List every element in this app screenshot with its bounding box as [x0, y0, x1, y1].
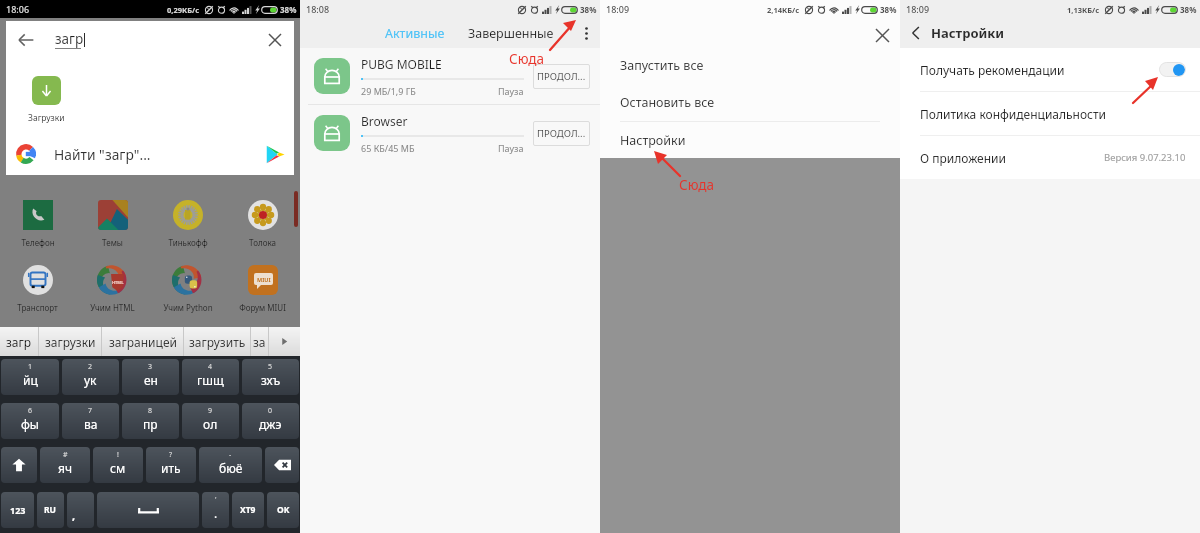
staticText: 2,14КБ/c — [767, 5, 800, 15]
button[interactable]: Завершенные — [462, 20, 560, 47]
staticText: 18:09 — [606, 3, 630, 15]
button[interactable]: Numbers — [1, 492, 34, 528]
staticText: Завершенные — [468, 25, 554, 42]
button[interactable]: загрузки — [39, 327, 101, 356]
staticText: зхъ — [261, 372, 281, 388]
button[interactable]: OK — [267, 492, 299, 528]
staticText: Учим HTML — [90, 302, 135, 313]
button[interactable]: Политика конфиденциальности — [900, 92, 1200, 135]
button[interactable]: Back — [13, 27, 39, 53]
button[interactable]: Toggle recommendations — [1159, 62, 1186, 77]
button[interactable]: 2 — [62, 359, 119, 395]
button[interactable]: ' — [202, 492, 229, 528]
button[interactable]: PUBG MOBILE — [300, 48, 600, 104]
button[interactable]: MIUI — [225, 264, 300, 313]
staticText: 2 — [88, 362, 93, 372]
button[interactable]: More options — [575, 22, 597, 44]
staticText: 0,29КБ/c — [167, 5, 200, 15]
button[interactable]: Учим Python — [150, 264, 225, 313]
staticText: Сюда — [509, 50, 544, 68]
button[interactable]: загр — [0, 327, 38, 356]
button[interactable]: 5 — [242, 359, 299, 395]
staticText: RU — [44, 504, 57, 516]
staticText: 0 — [268, 406, 273, 416]
staticText: Активные — [385, 25, 445, 42]
staticText: 1 — [28, 362, 33, 372]
button[interactable]: ? — [146, 447, 196, 483]
button[interactable]: Clear — [263, 28, 287, 52]
button[interactable]: Comma — [67, 492, 94, 528]
button[interactable]: заграницей — [102, 327, 183, 356]
button[interactable]: # — [40, 447, 90, 483]
staticText: 65 КБ/45 МБ — [361, 142, 415, 154]
button[interactable]: Тинькофф — [150, 199, 225, 248]
button[interactable]: 6 — [1, 403, 59, 439]
staticText: фы — [21, 416, 39, 432]
button[interactable]: Language — [37, 492, 64, 528]
button[interactable]: Темы — [75, 199, 150, 248]
staticText: 1,13КБ/c — [1067, 5, 1100, 15]
staticText: О приложении — [920, 150, 1006, 166]
staticText: ол — [203, 416, 218, 432]
staticText: 7 — [88, 406, 93, 416]
staticText: 38% — [580, 4, 597, 15]
button[interactable]: Close — [871, 24, 893, 46]
staticText: 29 МБ/1,9 ГБ — [361, 85, 416, 97]
button[interactable]: Загрузки — [20, 76, 72, 124]
staticText: PUBG MOBILE — [361, 56, 442, 72]
button[interactable]: О приложении — [900, 136, 1200, 179]
button[interactable]: 0 — [242, 403, 299, 439]
staticText: Остановить все — [620, 94, 715, 111]
button[interactable]: Browser — [300, 105, 600, 161]
staticText: Транспорт — [17, 302, 58, 313]
button[interactable]: 3 — [122, 359, 179, 395]
staticText: XT9 — [240, 504, 256, 516]
staticText: загрузить — [189, 334, 246, 350]
staticText: загрузки — [45, 334, 96, 350]
staticText: Политика конфиденциальности — [920, 106, 1107, 122]
staticText: Получать рекомендации — [920, 62, 1065, 78]
staticText: Телефон — [21, 237, 55, 248]
button[interactable]: Запустить все — [600, 47, 900, 84]
staticText: Форум MIUI — [239, 302, 286, 313]
button[interactable]: Shift — [1, 447, 37, 483]
button[interactable]: 9 — [182, 403, 239, 439]
button[interactable]: HTML — [75, 264, 150, 313]
button[interactable]: - — [199, 447, 262, 483]
button[interactable]: 7 — [62, 403, 119, 439]
button[interactable]: 8 — [122, 403, 179, 439]
button[interactable]: Получать рекомендации — [900, 48, 1200, 91]
button[interactable]: 1 — [1, 359, 59, 395]
button[interactable]: Остановить все — [600, 84, 900, 121]
button[interactable]: Активные — [379, 20, 451, 47]
staticText: яч — [58, 460, 72, 476]
staticText: 38% — [1180, 4, 1197, 15]
button[interactable]: Back — [905, 22, 927, 44]
button[interactable]: Транспорт — [0, 264, 75, 313]
button[interactable]: Backspace — [265, 447, 299, 483]
button[interactable]: ПРОДОЛ... — [533, 64, 590, 89]
button[interactable]: ! — [93, 447, 143, 483]
button[interactable]: Толока — [225, 199, 300, 248]
staticText: 18:06 — [6, 3, 30, 15]
button[interactable]: за — [251, 327, 268, 356]
staticText: ? — [169, 450, 173, 460]
button[interactable]: загрузить — [184, 327, 250, 356]
button[interactable]: ПРОДОЛ... — [533, 121, 590, 146]
staticText: заграницей — [109, 334, 177, 350]
staticText: ПРОДОЛ... — [537, 70, 586, 83]
button[interactable]: Найти "загр"... — [6, 133, 294, 175]
button[interactable]: More suggestions — [269, 327, 300, 356]
button[interactable]: Space — [97, 492, 199, 528]
staticText: Browser — [361, 113, 408, 129]
button[interactable]: 4 — [182, 359, 239, 395]
staticText: Версия 9.07.23.10 — [1104, 151, 1186, 164]
staticText: Тинькофф — [168, 237, 208, 248]
staticText: см — [110, 460, 126, 476]
button[interactable]: Телефон — [0, 199, 75, 248]
button[interactable]: Настройки — [600, 122, 900, 158]
staticText: пр — [143, 416, 158, 432]
staticText: ва — [84, 416, 98, 432]
staticText: MIUI — [257, 276, 271, 283]
button[interactable]: XT9 — [232, 492, 264, 528]
